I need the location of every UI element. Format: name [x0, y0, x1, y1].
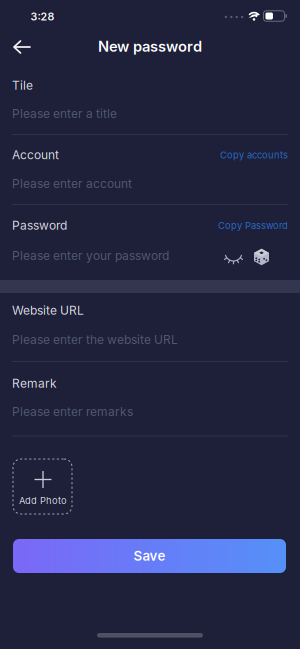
button[interactable]: Add Photo: [13, 459, 72, 514]
button[interactable]: Save: [13, 539, 286, 573]
staticText: Password: [12, 218, 67, 233]
staticText: Account: [12, 148, 59, 162]
staticText: New password: [98, 38, 202, 55]
staticText: Save: [133, 548, 165, 564]
staticText: Please enter your password: [12, 249, 169, 263]
button[interactable]: Copy accounts: [220, 149, 288, 160]
staticText: 3:28: [30, 10, 54, 23]
staticText: Copy Password: [218, 220, 288, 231]
button[interactable]: Generate password: [251, 247, 271, 267]
staticText: Copy accounts: [220, 149, 288, 160]
button[interactable]: Copy Password: [218, 220, 288, 231]
staticText: Please enter the website URL: [12, 333, 178, 347]
staticText: Remark: [12, 376, 57, 391]
button[interactable]: Back: [6, 32, 38, 61]
staticText: Add Photo: [19, 495, 67, 506]
staticText: Please enter account: [12, 177, 132, 191]
staticText: Please enter a title: [12, 107, 117, 121]
staticText: Tile: [12, 78, 33, 93]
button[interactable]: Show password: [222, 248, 245, 264]
staticText: Please enter remarks: [12, 405, 133, 419]
staticText: Website URL: [12, 303, 84, 318]
